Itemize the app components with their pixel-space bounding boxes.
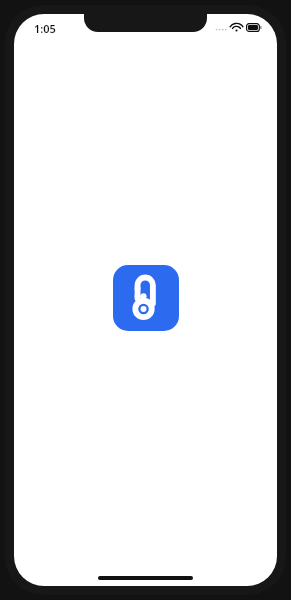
button[interactable]: App logo (113, 265, 179, 331)
button[interactable]: Home (98, 576, 193, 580)
staticText: 1:05 (34, 21, 56, 36)
